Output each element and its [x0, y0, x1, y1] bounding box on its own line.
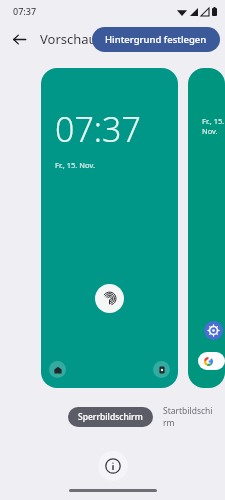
- staticText: Vorschau: [40, 30, 97, 48]
- staticText: Fr., 15. Nov.: [55, 160, 95, 170]
- button[interactable]: Hintergrund festlegen: [92, 27, 220, 52]
- staticText: Startbildschirm: [163, 405, 215, 429]
- button[interactable]: Kamera: [153, 361, 170, 378]
- staticText: Hintergrund festlegen: [105, 33, 207, 46]
- button[interactable]: Fr., 15. Nov.: [188, 68, 225, 388]
- button[interactable]: [198, 352, 225, 370]
- button[interactable]: Zurück: [5, 25, 33, 53]
- staticText: 07:37: [55, 106, 141, 152]
- button[interactable]: Smart Home: [49, 361, 66, 378]
- button[interactable]: Sperrbildschirm: [68, 407, 153, 427]
- button[interactable]: Startbildschirm: [153, 401, 225, 433]
- button[interactable]: Informationen: [98, 451, 128, 481]
- button[interactable]: Fingerabdruck entsperren: [95, 284, 124, 313]
- staticText: Sperrbildschirm: [78, 411, 143, 423]
- staticText: 07:37: [13, 5, 37, 17]
- button[interactable]: 07:37: [41, 68, 178, 388]
- button[interactable]: Einstellungen: [204, 321, 223, 340]
- staticText: Fr., 15. Nov.: [202, 116, 225, 136]
